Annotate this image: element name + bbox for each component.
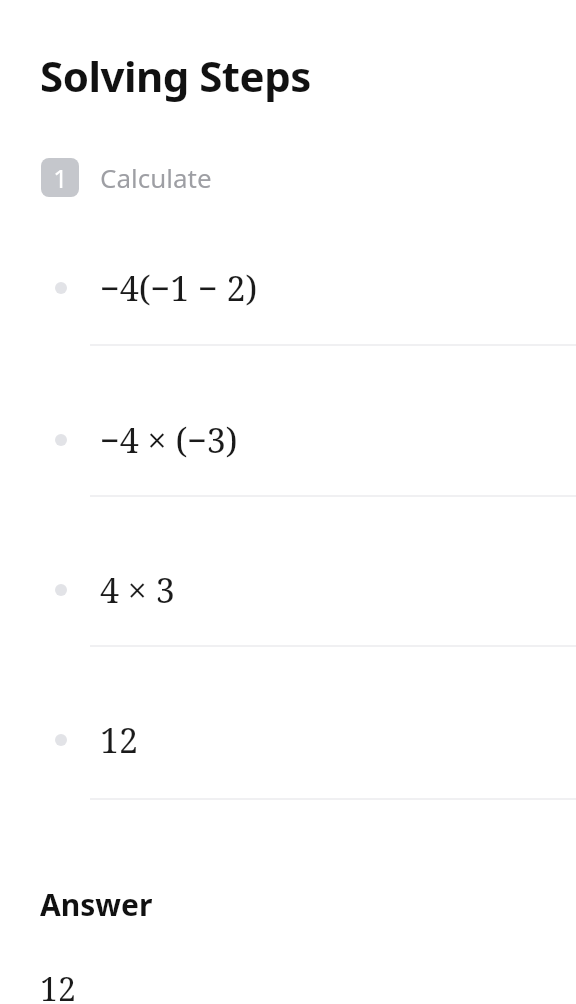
staticText: −4(−1 − 2) bbox=[100, 265, 258, 311]
button[interactable]: −4(−1 − 2) bbox=[0, 251, 576, 344]
staticText: Calculate bbox=[100, 160, 212, 195]
staticText: 1 bbox=[53, 161, 68, 195]
staticText: −4 × (−3) bbox=[100, 417, 238, 463]
button[interactable]: 1 bbox=[0, 154, 576, 201]
button[interactable]: 12 bbox=[0, 705, 576, 798]
staticText: Answer bbox=[40, 884, 153, 925]
staticText: 4 × 3 bbox=[100, 567, 175, 613]
button[interactable]: 4 × 3 bbox=[0, 555, 576, 645]
button[interactable]: −4 × (−3) bbox=[0, 405, 576, 495]
staticText: 12 bbox=[100, 717, 139, 763]
staticText: Solving Steps bbox=[40, 47, 311, 104]
staticText: 12 bbox=[40, 967, 76, 1004]
